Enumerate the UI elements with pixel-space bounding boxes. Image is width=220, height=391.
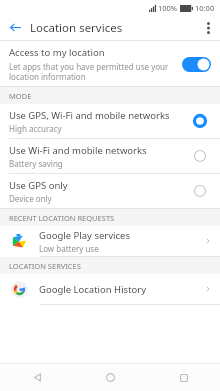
button[interactable]: Access to my location [0, 41, 220, 86]
staticText: Battery saving [9, 158, 63, 169]
button[interactable]: Recent apps [147, 364, 220, 391]
button[interactable]: Use GPS only [191, 182, 209, 200]
button[interactable]: Use GPS, Wi-Fi and mobile networks [0, 104, 220, 138]
button[interactable]: Home [74, 364, 147, 391]
staticText: Use GPS, Wi-Fi and mobile networks [9, 109, 170, 122]
staticText: Low battery use [39, 243, 99, 254]
staticText: Use GPS only [9, 179, 68, 192]
button[interactable]: More options [196, 15, 220, 40]
staticText: Google Play services [39, 229, 130, 242]
staticText: High accuracy [9, 123, 62, 134]
staticText: MODE [9, 91, 32, 101]
button[interactable]: Use Wi-Fi and mobile networks [0, 139, 220, 173]
staticText: RECENT LOCATION REQUESTS [9, 213, 115, 223]
button[interactable]: Use GPS, Wi-Fi and mobile networks [191, 112, 209, 130]
button[interactable]: Access to my location toggle [181, 56, 211, 72]
staticText: Device only [9, 193, 52, 204]
staticText: Access to my location [9, 46, 105, 59]
staticText: Location services [30, 20, 123, 36]
button[interactable]: Back [0, 15, 30, 40]
button[interactable]: Google Play services [0, 226, 220, 256]
staticText: Google Location History [39, 283, 147, 296]
staticText: Use Wi-Fi and mobile networks [9, 144, 147, 157]
staticText: Let apps that you have permitted use you… [9, 61, 175, 82]
staticText: 10:00 [195, 3, 215, 13]
button[interactable]: Back [0, 364, 74, 391]
button[interactable]: Use Wi-Fi and mobile networks [191, 147, 209, 165]
button[interactable]: Google Location History [0, 274, 220, 304]
staticText: LOCATION SERVICES [9, 261, 81, 271]
staticText: 100% [158, 3, 178, 13]
button[interactable]: Use GPS only [0, 174, 220, 208]
